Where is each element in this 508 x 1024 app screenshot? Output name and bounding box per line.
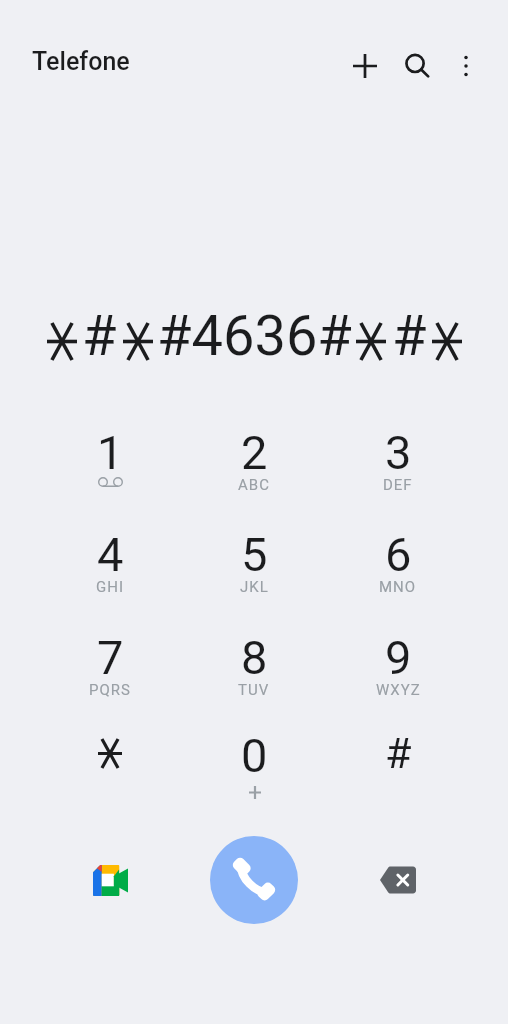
staticText: PQRS [89,681,131,699]
button[interactable]: 6 [346,527,450,623]
button[interactable]: Video call with Meet [74,844,146,916]
staticText: 2 [241,425,268,480]
staticText: 4 [97,527,124,582]
button[interactable]: 1 [58,425,162,521]
staticText: 0 [241,728,268,783]
staticText: JKL [240,578,269,596]
button[interactable]: 4 [58,527,162,623]
staticText: GHI [96,578,124,596]
staticText: # [385,728,412,778]
staticText: MNO [379,578,417,596]
button[interactable]: Search [393,42,441,90]
staticText: # [82,303,117,367]
button[interactable]: 8 [202,630,306,726]
staticText: WXYZ [376,681,421,699]
staticText: 9 [385,630,412,685]
button[interactable]: Call [210,836,298,924]
staticText: 6 [385,527,412,582]
button[interactable]: More options [442,42,490,90]
button[interactable]: 5 [202,527,306,623]
staticText: 8 [241,630,268,685]
staticText: Telefone [32,47,130,76]
button[interactable]: Add contact [341,42,389,90]
button[interactable]: 2 [202,425,306,521]
staticText: 5 [241,527,268,582]
staticText: ABC [238,476,270,494]
staticText: 3 [385,425,412,480]
button[interactable] [58,728,162,824]
button[interactable]: 0 [202,728,306,824]
staticText: # [392,303,427,367]
staticText: 7 [97,630,124,685]
button[interactable]: Backspace [362,844,434,916]
staticText: DEF [383,476,413,494]
staticText: TUV [238,681,270,699]
button[interactable]: 9 [346,630,450,726]
staticText: #4636# [157,303,352,367]
staticText: 1 [97,425,124,480]
button[interactable]: 3 [346,425,450,521]
button[interactable]: 7 [58,630,162,726]
button[interactable]: # [346,728,450,824]
